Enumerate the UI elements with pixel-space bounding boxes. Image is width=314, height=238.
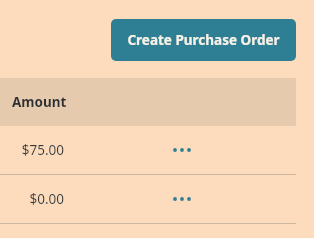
staticText: Create Purchase Order bbox=[127, 31, 280, 49]
button[interactable]: More options bbox=[168, 136, 196, 164]
staticText: Amount bbox=[12, 93, 67, 111]
button[interactable]: Create Purchase Order bbox=[111, 19, 296, 61]
staticText: $75.00 bbox=[21, 141, 64, 159]
button[interactable]: Amount bbox=[0, 78, 296, 126]
button[interactable]: More options bbox=[168, 185, 196, 213]
button[interactable]: $75.00 bbox=[0, 126, 314, 174]
staticText: $0.00 bbox=[29, 190, 64, 208]
button[interactable]: $0.00 bbox=[0, 175, 314, 223]
